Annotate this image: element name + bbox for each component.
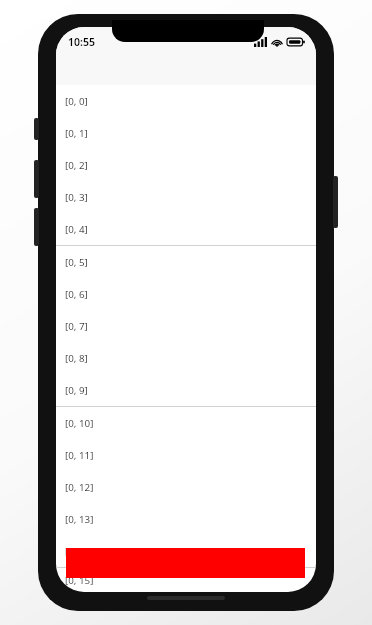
staticText: [0, 13] — [65, 513, 94, 526]
button[interactable]: [0, 13] — [56, 503, 316, 535]
button[interactable]: [0, 11] — [56, 439, 316, 471]
button[interactable]: [0, 14] — [56, 535, 316, 567]
button[interactable]: [0, 1] — [56, 117, 316, 149]
button[interactable]: [0, 0] — [56, 85, 316, 117]
button[interactable]: [0, 3] — [56, 181, 316, 213]
button[interactable]: [0, 4] — [56, 213, 316, 245]
button[interactable]: [0, 5] — [56, 246, 316, 278]
staticText: [0, 5] — [65, 256, 88, 269]
staticText: [0, 6] — [65, 288, 88, 301]
staticText: [0, 3] — [65, 191, 88, 204]
staticText: [0, 11] — [65, 449, 94, 462]
staticText: [0, 14] — [65, 545, 94, 558]
staticText: [0, 1] — [65, 127, 88, 140]
staticText: [0, 2] — [65, 159, 88, 172]
button[interactable]: [0, 9] — [56, 374, 316, 406]
staticText: [0, 9] — [65, 384, 88, 397]
button[interactable]: [0, 6] — [56, 278, 316, 310]
button[interactable]: [0, 15] — [56, 568, 316, 592]
button[interactable]: [0, 2] — [56, 149, 316, 181]
button[interactable]: [0, 10] — [56, 407, 316, 439]
staticText: [0, 4] — [65, 223, 88, 236]
button[interactable]: [0, 8] — [56, 342, 316, 374]
button[interactable]: [0, 7] — [56, 310, 316, 342]
button[interactable]: [0, 12] — [56, 471, 316, 503]
staticText: [0, 8] — [65, 352, 88, 365]
staticText: 10:55 — [68, 35, 95, 49]
staticText: [0, 7] — [65, 320, 88, 333]
staticText: [0, 0] — [65, 95, 88, 108]
staticText: [0, 15] — [65, 574, 94, 587]
staticText: [0, 12] — [65, 481, 94, 494]
staticText: [0, 10] — [65, 417, 94, 430]
